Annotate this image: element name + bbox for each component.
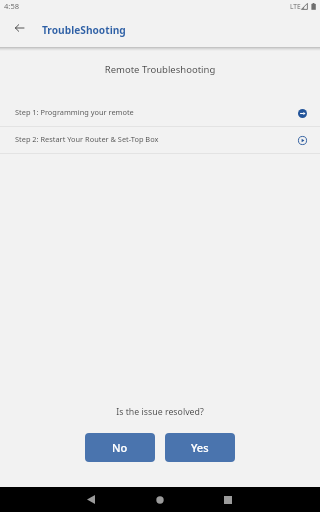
staticText: Step 2: Restart Your Router & Set-Top Bo… <box>15 134 159 144</box>
button[interactable]: Recents <box>212 487 244 512</box>
staticText: No <box>112 440 128 455</box>
staticText: TroubleShooting <box>42 23 126 37</box>
button[interactable]: No <box>85 433 155 462</box>
staticText: Step 1: Programming your remote <box>15 107 134 117</box>
staticText: Yes <box>191 440 209 455</box>
button[interactable]: Back <box>7 16 31 40</box>
button[interactable]: Yes <box>165 433 235 462</box>
button[interactable]: Home <box>144 487 176 512</box>
button[interactable]: Back <box>75 487 107 512</box>
staticText: Remote Troubleshooting <box>0 63 320 76</box>
button[interactable]: Step 2: Restart Your Router & Set-Top Bo… <box>0 127 320 154</box>
staticText: LTE <box>290 2 301 11</box>
staticText: Is the issue resolved? <box>0 406 320 418</box>
staticText: 4:58 <box>4 1 20 11</box>
button[interactable]: Step 1: Programming your remote <box>0 100 320 127</box>
